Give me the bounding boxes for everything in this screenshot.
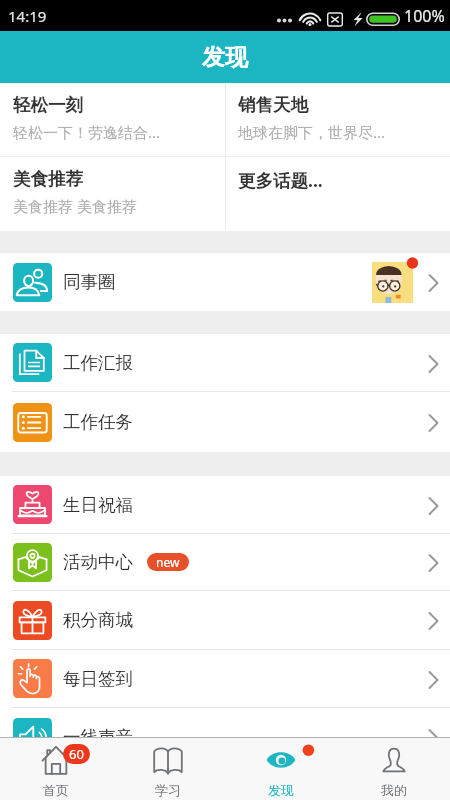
button[interactable]: 更多话题... xyxy=(225,157,450,231)
button[interactable]: 发现 xyxy=(224,738,337,800)
button[interactable]: 工作汇报 xyxy=(0,334,450,391)
button[interactable]: 60 xyxy=(0,738,112,800)
staticText: 更多话题... xyxy=(238,168,323,192)
button[interactable]: 美食推荐 xyxy=(0,157,225,231)
staticText: 工作任务 xyxy=(63,411,133,433)
staticText: 生日祝福 xyxy=(63,494,133,516)
staticText: 我的 xyxy=(381,782,407,798)
staticText: 同事圈 xyxy=(63,271,116,293)
staticText: 一线声音 xyxy=(63,726,133,748)
staticText: 发现 xyxy=(268,782,294,798)
staticText: 轻松一刻 xyxy=(13,94,83,116)
button[interactable]: 活动中心 xyxy=(0,534,450,590)
button[interactable]: 同事圈 xyxy=(0,253,450,311)
staticText: 美食推荐 美食推荐 xyxy=(13,196,137,216)
staticText: 发现 xyxy=(202,43,248,72)
staticText: 美食推荐 xyxy=(13,168,83,190)
button[interactable]: 轻松一刻 xyxy=(0,83,225,156)
staticText: 轻松一下！劳逸结合... xyxy=(13,122,161,142)
button[interactable]: 学习 xyxy=(112,738,224,800)
staticText: 14:19 xyxy=(8,6,47,26)
staticText: 销售天地 xyxy=(238,94,308,116)
staticText: 工作汇报 xyxy=(63,352,133,374)
staticText: 首页 xyxy=(43,782,69,798)
staticText: 活动中心 xyxy=(63,551,133,573)
staticText: 积分商城 xyxy=(63,609,133,631)
staticText: 100% xyxy=(404,5,445,27)
staticText: 学习 xyxy=(155,782,181,798)
button[interactable]: 工作任务 xyxy=(0,392,450,452)
button[interactable]: 积分商城 xyxy=(0,591,450,649)
staticText: new xyxy=(156,554,180,570)
button[interactable]: 每日签到 xyxy=(0,650,450,707)
button[interactable]: 销售天地 xyxy=(225,83,450,156)
staticText: 每日签到 xyxy=(63,668,133,690)
button[interactable]: 生日祝福 xyxy=(0,476,450,533)
button[interactable]: 我的 xyxy=(337,738,450,800)
button[interactable]: 一线声音 xyxy=(0,708,450,766)
staticText: 60 xyxy=(69,745,84,763)
staticText: 地球在脚下，世界尽... xyxy=(238,122,386,142)
